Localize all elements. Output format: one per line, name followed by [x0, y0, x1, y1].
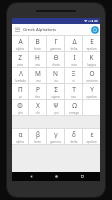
staticText: Μ	[35, 69, 41, 78]
staticText: delta	[70, 140, 78, 144]
staticText: Λ	[19, 69, 23, 78]
button[interactable]: Ω	[65, 100, 82, 115]
staticText: gamma	[50, 140, 61, 144]
button[interactable]: Ο	[83, 68, 100, 83]
button[interactable]: ε	[83, 129, 100, 144]
button[interactable]: Π	[12, 84, 28, 99]
staticText: omicron	[86, 79, 98, 83]
staticText: Ι	[73, 53, 76, 62]
staticText: lambda	[15, 79, 26, 83]
button[interactable]: Σ	[47, 84, 64, 99]
staticText: β	[36, 130, 40, 139]
staticText: gamma	[50, 47, 61, 51]
staticText: γ	[54, 130, 58, 139]
staticText: Θ	[53, 53, 59, 62]
staticText: ε	[90, 130, 94, 139]
staticText: Χ	[36, 101, 40, 110]
button[interactable]: Ι	[65, 52, 82, 67]
staticText: Φ	[17, 101, 23, 110]
button[interactable]: Υ	[83, 84, 100, 99]
button[interactable]: Β	[29, 36, 46, 51]
staticText: delta	[70, 47, 78, 51]
staticText: nu	[54, 79, 58, 83]
button[interactable]: Μ	[29, 68, 46, 83]
button[interactable]: Η	[29, 52, 46, 67]
button[interactable]: Ρ	[29, 84, 46, 99]
staticText: δ	[72, 130, 76, 139]
staticText: Τ	[72, 85, 76, 94]
staticText: rho	[35, 95, 40, 99]
staticText: Γ	[54, 37, 58, 46]
staticText: theta	[52, 63, 60, 67]
staticText: beta	[34, 47, 41, 51]
staticText: α	[18, 130, 23, 139]
staticText: upsilon	[86, 95, 97, 99]
staticText: chi	[35, 111, 40, 115]
staticText: alpha	[16, 47, 24, 51]
button[interactable]: Ζ	[12, 52, 28, 67]
button[interactable]: Χ	[29, 100, 46, 115]
staticText: pi	[19, 95, 22, 99]
button[interactable]: Home	[49, 172, 63, 181]
staticText: Β	[35, 37, 40, 46]
staticText: Ζ	[18, 53, 22, 62]
button[interactable]: Open navigation menu	[12, 24, 23, 35]
staticText: phi	[18, 111, 23, 115]
staticText: tau	[71, 95, 76, 99]
button[interactable]: β	[29, 129, 46, 144]
button[interactable]: Λ	[12, 68, 28, 83]
staticText: iota	[71, 63, 77, 67]
button[interactable]: Ε	[83, 36, 100, 51]
button[interactable]: δ	[65, 129, 82, 144]
staticText: sigma	[51, 95, 60, 99]
staticText: Δ	[72, 37, 77, 46]
staticText: Ξ	[71, 69, 76, 78]
staticText: epsilon	[86, 47, 97, 51]
button[interactable]: Settings	[89, 24, 100, 35]
button[interactable]: Φ	[12, 100, 28, 115]
staticText: Ψ	[53, 101, 59, 110]
staticText: Κ	[89, 53, 94, 62]
staticText: mu	[36, 79, 41, 83]
button[interactable]: Κ	[83, 52, 100, 67]
staticText: Ε	[90, 37, 94, 46]
staticText: omega	[69, 111, 79, 115]
button[interactable]: Θ	[47, 52, 64, 67]
button[interactable]: Τ	[65, 84, 82, 99]
button[interactable]: Ξ	[65, 68, 82, 83]
button[interactable]: Recent apps	[75, 172, 89, 181]
staticText: Υ	[90, 85, 94, 94]
staticText: Ρ	[36, 85, 40, 94]
staticText: alpha	[16, 140, 24, 144]
button[interactable]: Ν	[47, 68, 64, 83]
staticText: Α	[18, 37, 23, 46]
button[interactable]: Α	[12, 36, 28, 51]
staticText: kappa	[87, 63, 96, 67]
staticText: Σ	[54, 85, 58, 94]
staticText: eta	[35, 63, 40, 67]
staticText: zeta	[17, 63, 23, 67]
staticText: Ο	[89, 69, 95, 78]
button[interactable]: γ	[47, 129, 64, 144]
button[interactable]: Back	[24, 172, 38, 181]
staticText: Π	[18, 85, 23, 94]
staticText: psi	[54, 111, 59, 115]
staticText: Ω	[72, 101, 77, 110]
button[interactable]: Ψ	[47, 100, 64, 115]
button[interactable]: Δ	[65, 36, 82, 51]
button[interactable]: Γ	[47, 36, 64, 51]
staticText: xi	[72, 79, 75, 83]
staticText: beta	[34, 140, 41, 144]
staticText: Greek Alphabets	[23, 27, 57, 33]
staticText: epsilon	[86, 140, 97, 144]
staticText: Η	[35, 53, 40, 62]
staticText: Ν	[53, 69, 58, 78]
button[interactable]: α	[12, 129, 28, 144]
